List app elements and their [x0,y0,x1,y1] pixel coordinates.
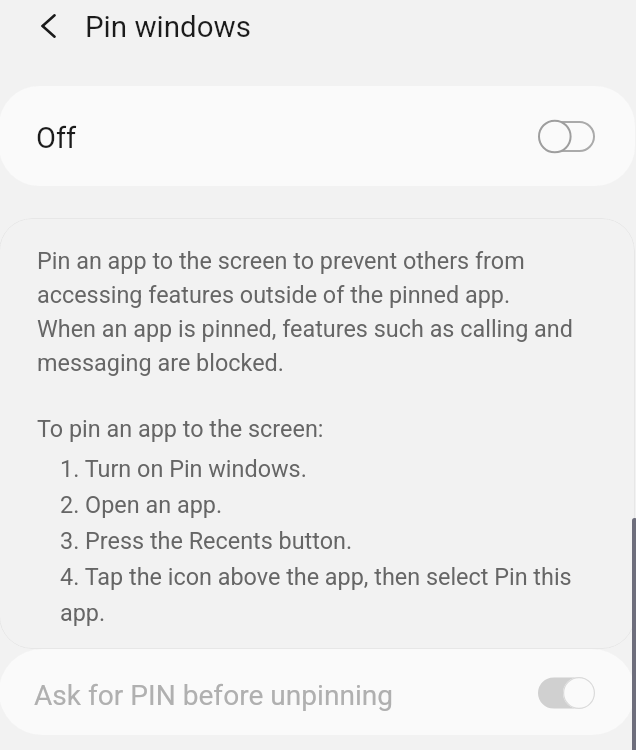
staticText: 3. Press the Recents button. [60,520,353,556]
staticText: Pin windows [85,10,251,45]
staticText: 4. Tap the icon above the app, then sele… [60,556,602,628]
staticText: Off [36,121,77,155]
button[interactable]: Navigate up [25,2,73,50]
button[interactable]: Off [0,86,635,186]
staticText: Ask for PIN before unpinning [34,679,394,712]
button[interactable]: Ask for PIN before unpinning [0,649,635,735]
staticText: 2. Open an app. [60,484,223,520]
button[interactable]: Ask for PIN before unpinning, on [538,674,595,710]
button[interactable]: Pin windows, off [538,119,595,154]
staticText: To pin an app to the screen: [37,410,324,444]
staticText: Pin an app to the screen to prevent othe… [37,242,577,378]
staticText: 1. Turn on Pin windows. [60,448,307,484]
